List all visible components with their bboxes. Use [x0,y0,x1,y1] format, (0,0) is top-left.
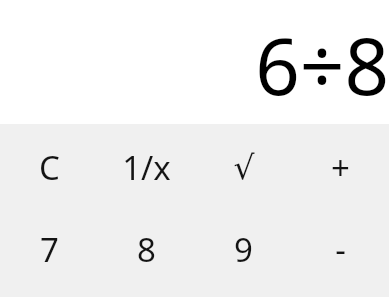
staticText: 6÷8 [255,12,389,118]
button[interactable]: Minus [292,210,389,288]
button[interactable]: Nine [195,210,292,288]
staticText: + [331,145,350,190]
staticText: - [335,227,346,272]
staticText: 7 [40,227,59,272]
button[interactable]: Eight [98,210,195,288]
button[interactable]: Clear [0,124,98,210]
button[interactable]: Seven [0,210,98,288]
button[interactable]: Reciprocal [98,124,195,210]
button[interactable]: Square root [195,124,292,210]
staticText: 8 [137,227,156,272]
button[interactable]: Plus [292,124,389,210]
staticText: 1/x [122,145,171,190]
button[interactable]: 6÷8 [0,0,389,124]
staticText: √ [233,148,255,186]
staticText: C [39,145,60,190]
staticText: 9 [234,227,253,272]
